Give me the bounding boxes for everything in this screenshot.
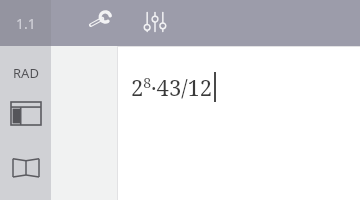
staticText: 28·43/12 (131, 72, 213, 102)
staticText: 1.1 (16, 14, 36, 33)
button[interactable]: Page layout (4, 96, 48, 130)
button[interactable]: RAD (0, 60, 51, 86)
button[interactable]: Settings (133, 0, 177, 44)
staticText: RAD (13, 64, 39, 82)
button[interactable]: Documents (4, 150, 48, 184)
button[interactable]: 1.1 (0, 0, 51, 46)
button[interactable]: Tools (80, 0, 120, 40)
